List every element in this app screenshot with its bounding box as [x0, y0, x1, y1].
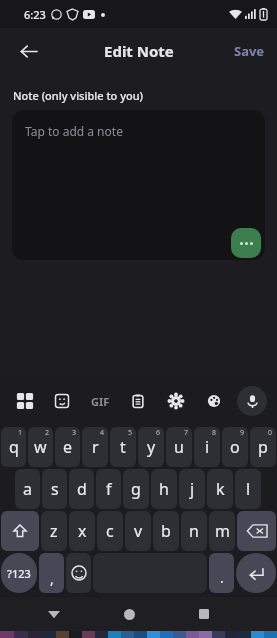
button[interactable]: Emoji — [66, 553, 91, 593]
staticText: j — [190, 478, 195, 500]
button[interactable]: r — [82, 427, 108, 467]
button[interactable]: Voice input — [237, 386, 267, 416]
staticText: 2 — [45, 428, 50, 438]
button[interactable]: More options — [231, 228, 261, 258]
staticText: ?123 — [7, 566, 31, 581]
staticText: x — [78, 520, 87, 542]
button[interactable]: Settings — [157, 375, 195, 427]
staticText: f — [106, 478, 112, 500]
staticText: . — [220, 568, 224, 587]
button[interactable]: Backspace — [237, 511, 276, 551]
staticText: b — [161, 520, 171, 542]
button[interactable]: a — [15, 469, 40, 509]
staticText: s — [51, 478, 59, 500]
button[interactable]: n — [181, 511, 207, 551]
staticText: 7 — [184, 428, 189, 438]
button[interactable]: Tap to add a note — [12, 110, 265, 260]
staticText: 6 — [156, 428, 161, 438]
button[interactable]: GIF — [81, 375, 119, 427]
button[interactable]: v — [125, 511, 151, 551]
staticText: 9 — [240, 428, 245, 438]
staticText: y — [147, 436, 156, 458]
button[interactable]: Clipboard — [119, 375, 157, 427]
button[interactable]: ?123 — [1, 553, 37, 593]
button[interactable]: d — [69, 469, 94, 509]
button[interactable]: l — [235, 469, 261, 509]
button[interactable]: y — [138, 427, 164, 467]
button[interactable]: h — [151, 469, 177, 509]
staticText: u — [174, 436, 184, 458]
staticText: 3 — [72, 428, 77, 438]
staticText: Edit Note — [104, 41, 174, 61]
staticText: h — [159, 478, 169, 500]
staticText: 8 — [212, 428, 217, 438]
staticText: c — [106, 520, 114, 542]
staticText: , — [50, 569, 54, 588]
staticText: k — [216, 478, 225, 500]
staticText: v — [134, 520, 143, 542]
button[interactable]: Comma — [39, 553, 64, 593]
button[interactable]: g — [123, 469, 149, 509]
staticText: p — [258, 436, 268, 458]
button[interactable]: s — [42, 469, 67, 509]
staticText: GIF — [91, 394, 110, 409]
staticText: o — [230, 436, 240, 458]
button[interactable]: z — [41, 511, 67, 551]
button[interactable]: Home — [112, 597, 146, 631]
button[interactable]: Recents — [187, 597, 221, 631]
button[interactable]: p — [250, 427, 276, 467]
staticText: Save — [234, 42, 265, 60]
button[interactable]: Back — [10, 33, 46, 69]
button[interactable]: Shift — [1, 511, 39, 551]
button[interactable]: w — [28, 427, 53, 467]
button[interactable]: e — [55, 427, 80, 467]
staticText: 4 — [100, 428, 105, 438]
button[interactable]: b — [153, 511, 179, 551]
button[interactable]: u — [166, 427, 192, 467]
button[interactable]: o — [222, 427, 248, 467]
button[interactable]: Save — [222, 34, 277, 68]
staticText: r — [92, 436, 99, 458]
button[interactable]: Themes — [195, 375, 233, 427]
button[interactable]: x — [69, 511, 95, 551]
staticText: 0 — [268, 428, 273, 438]
staticText: 5 — [128, 428, 133, 438]
staticText: t — [120, 436, 126, 458]
staticText: Tap to add a note — [25, 123, 123, 139]
button[interactable]: i — [194, 427, 220, 467]
staticText: i — [205, 436, 210, 458]
button[interactable]: Enter — [236, 553, 276, 593]
staticText: 1 — [18, 428, 23, 438]
staticText: q — [9, 436, 19, 458]
button[interactable]: Apps — [6, 375, 43, 427]
button[interactable]: j — [179, 469, 205, 509]
button[interactable]: t — [110, 427, 136, 467]
staticText: Note (only visible to you) — [13, 88, 144, 103]
button[interactable]: Stickers — [43, 375, 81, 427]
staticText: w — [34, 436, 47, 458]
button[interactable]: f — [96, 469, 121, 509]
staticText: m — [215, 520, 230, 542]
button[interactable]: Period — [209, 553, 234, 593]
button[interactable]: q — [1, 427, 26, 467]
button[interactable]: c — [97, 511, 123, 551]
staticText: 6:23 — [24, 7, 46, 22]
staticText: g — [131, 478, 141, 500]
staticText: n — [189, 520, 199, 542]
button[interactable]: Hide keyboard — [37, 597, 71, 631]
button[interactable]: m — [209, 511, 235, 551]
staticText: l — [246, 478, 251, 500]
staticText: z — [50, 520, 58, 542]
staticText: e — [63, 436, 73, 458]
button[interactable]: k — [207, 469, 233, 509]
staticText: d — [77, 478, 87, 500]
staticText: a — [23, 478, 32, 500]
